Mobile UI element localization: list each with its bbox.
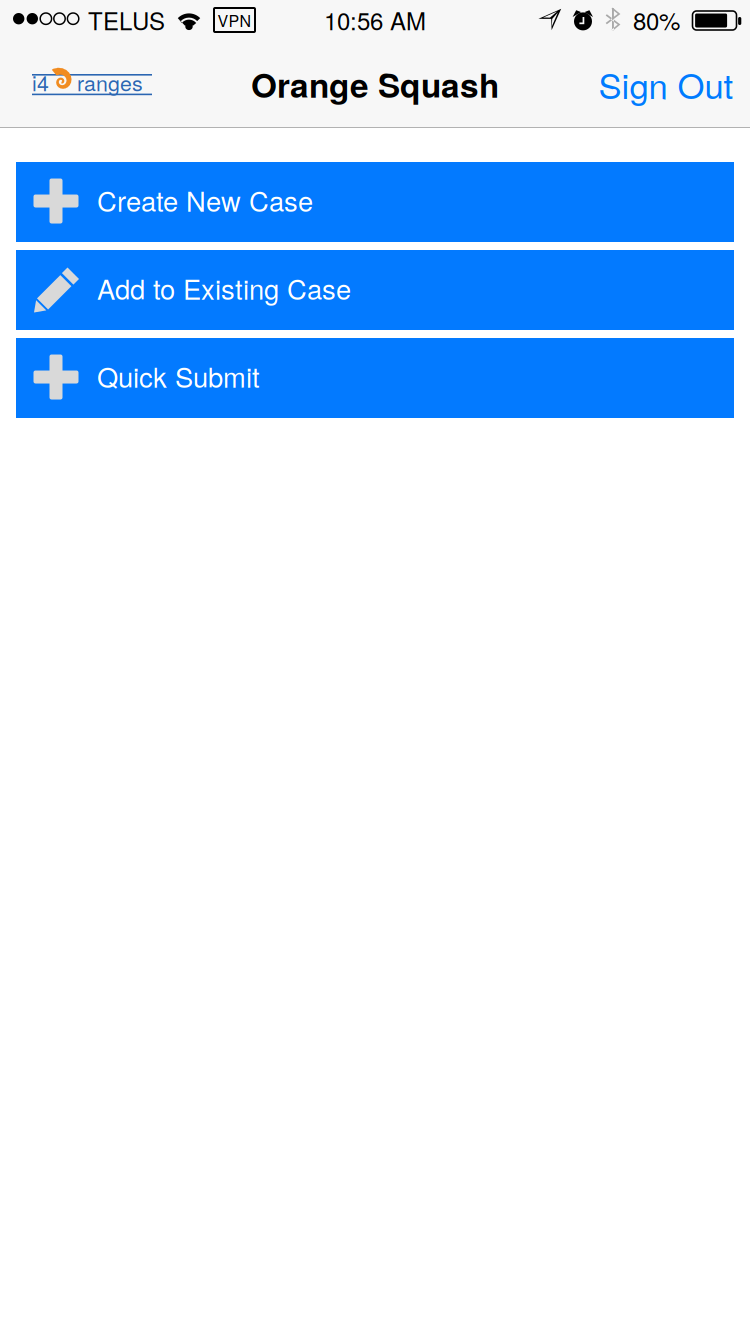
staticText: VPN [217, 8, 251, 31]
button[interactable]: Add to Existing Case [16, 250, 734, 330]
staticText: i4 [32, 67, 49, 97]
staticText: ranges [77, 67, 143, 97]
staticText: Sign Out [598, 59, 733, 109]
staticText: TELUS [88, 3, 165, 37]
staticText: Orange Squash [251, 60, 499, 108]
button[interactable]: i4Oranges [7, 36, 177, 124]
staticText: Create New Case [97, 180, 313, 219]
button[interactable]: Create New Case [16, 162, 734, 242]
staticText: Quick Submit [97, 356, 260, 395]
staticText: 10:56 AM [324, 3, 426, 37]
button[interactable]: Quick Submit [16, 338, 734, 418]
button[interactable]: Sign Out [581, 40, 750, 128]
staticText: 80% [633, 3, 680, 37]
staticText: Add to Existing Case [97, 268, 351, 307]
